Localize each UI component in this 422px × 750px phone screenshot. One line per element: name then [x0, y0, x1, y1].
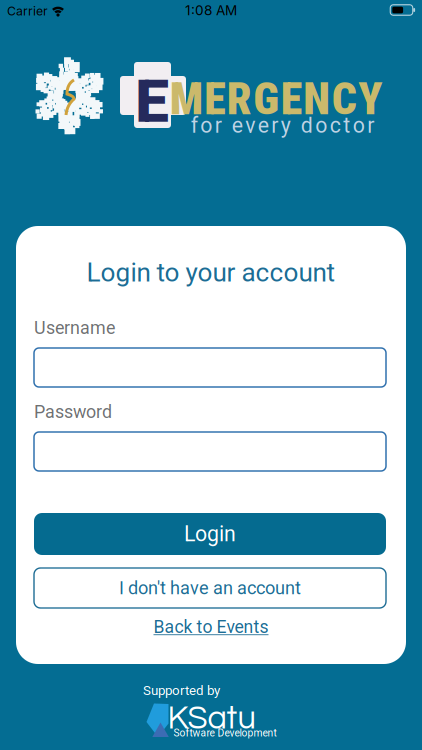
button[interactable]: Password [34, 432, 386, 471]
staticText: Back to Events [153, 617, 268, 637]
staticText: Username [34, 317, 115, 338]
staticText: Password [34, 401, 112, 422]
staticText: MERGENCY [170, 73, 382, 125]
staticText: I don't have an account [119, 577, 301, 599]
staticText: Carrier [7, 4, 48, 18]
button[interactable]: Back to Events [153, 617, 268, 637]
button[interactable]: I don't have an account [34, 568, 386, 608]
staticText: Login to your account [86, 257, 335, 288]
staticText: Supported by [143, 683, 220, 698]
staticText: KSatu [167, 702, 255, 735]
staticText: Software Development [173, 727, 276, 739]
button[interactable]: Username [34, 348, 386, 387]
staticText: Login [184, 521, 236, 546]
staticText: for every doctor [191, 113, 374, 138]
button[interactable]: Login [34, 513, 386, 555]
staticText: 1:08 AM [185, 2, 237, 19]
staticText: E [135, 66, 169, 136]
